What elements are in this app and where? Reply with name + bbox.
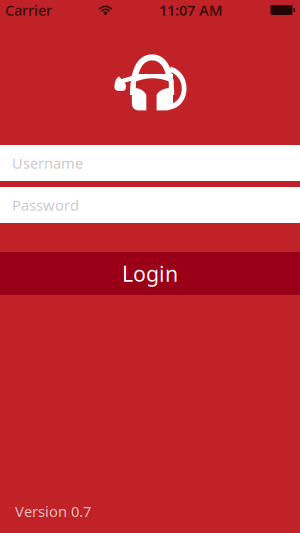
staticText: Password <box>12 195 79 215</box>
staticText: 11:07 AM <box>159 0 223 20</box>
button[interactable]: Login <box>0 252 300 295</box>
staticText: Login <box>122 259 178 288</box>
staticText: Carrier <box>5 0 52 20</box>
staticText: Version 0.7 <box>15 501 91 521</box>
staticText: Username <box>12 153 83 173</box>
